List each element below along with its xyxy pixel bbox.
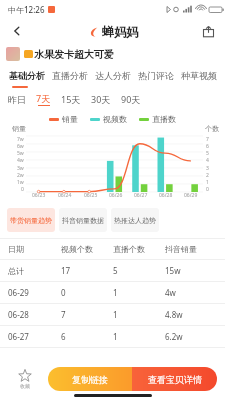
staticText: 直播数 [152, 114, 176, 124]
staticText: 抖音销量 [165, 244, 217, 254]
staticText: 4.8w [165, 309, 217, 320]
button[interactable]: 抖音销量数据 [59, 208, 107, 232]
staticText: 7w [17, 136, 24, 143]
button[interactable]: Share [198, 21, 218, 41]
staticText: 06/27 [134, 192, 148, 199]
staticText: 水果发卡超大可爱 [34, 48, 114, 61]
staticText: 达人分析 [95, 70, 131, 81]
button[interactable]: 昨日 [8, 94, 26, 105]
button[interactable]: 热门评论 [134, 64, 177, 86]
staticText: 06/25 [84, 192, 98, 199]
button[interactable]: 热推达人趋势 [111, 208, 159, 232]
staticText: 1 [206, 179, 209, 186]
staticText: 4w [17, 157, 24, 164]
staticText: 带货销量趋势 [10, 216, 52, 225]
staticText: 抖音销量数据 [62, 216, 104, 225]
staticText: 蝉妈妈 [102, 24, 138, 39]
button[interactable]: 7天 [36, 92, 51, 106]
staticText: 销量 [12, 124, 26, 133]
staticText: 0 [21, 186, 24, 193]
staticText: 直播个数 [113, 244, 165, 254]
staticText: 30天 [91, 93, 111, 105]
staticText: 5 [113, 265, 165, 276]
button[interactable]: 06-28 [8, 304, 217, 325]
button[interactable]: 90天 [121, 93, 141, 105]
button[interactable]: 带货销量趋势 [7, 208, 55, 232]
staticText: 种草视频 [181, 70, 217, 81]
staticText: 查看宝贝详情 [148, 374, 202, 385]
staticText: 1 [113, 287, 165, 298]
staticText: 0 [61, 287, 113, 298]
staticText: 06/28 [159, 192, 173, 199]
staticText: 06/23 [32, 192, 46, 199]
staticText: 基础分析 [9, 70, 45, 81]
staticText: 热推达人趋势 [114, 216, 156, 225]
staticText: 06/24 [58, 192, 72, 199]
staticText: 5w [17, 150, 24, 157]
button[interactable]: 收藏 [8, 369, 42, 389]
staticText: 中午12:26 [8, 4, 45, 15]
button[interactable]: 复制链接 [48, 367, 132, 391]
button[interactable]: 总计 [8, 260, 217, 281]
staticText: 90天 [121, 93, 141, 105]
staticText: 06-27 [8, 331, 61, 342]
button[interactable]: 06-27 [8, 326, 217, 347]
staticText: 3w [17, 165, 24, 172]
staticText: 06/29 [184, 192, 198, 199]
staticText: 1w [17, 179, 24, 186]
staticText: 视频数 [103, 114, 127, 124]
staticText: 直播分析 [52, 70, 88, 81]
button[interactable]: 06-29 [8, 282, 217, 303]
button[interactable]: 15天 [61, 93, 81, 105]
button[interactable]: 直播分析 [48, 64, 91, 86]
staticText: 7天 [36, 92, 51, 104]
staticText: 1 [113, 331, 165, 342]
staticText: 收藏 [20, 383, 30, 389]
staticText: 15天 [61, 93, 81, 105]
staticText: 7 [206, 136, 209, 143]
staticText: 06/26 [109, 192, 123, 199]
staticText: 销量 [62, 114, 78, 124]
staticText: 15w [165, 265, 217, 276]
button[interactable]: 基础分析 [5, 64, 48, 86]
staticText: 总计 [8, 266, 61, 276]
button[interactable]: 查看宝贝详情 [132, 367, 217, 391]
staticText: 3 [206, 165, 209, 172]
staticText: 6.2w [165, 331, 217, 342]
staticText: 7 [61, 309, 113, 320]
staticText: 06-28 [8, 309, 61, 320]
staticText: 视频个数 [61, 244, 113, 254]
staticText: 热门评论 [138, 70, 174, 81]
button[interactable]: 水果发卡超大可爱 [6, 44, 219, 64]
staticText: 复制链接 [72, 374, 108, 385]
staticText: 昨日 [8, 94, 26, 105]
staticText: 0 [206, 186, 209, 193]
staticText: 17 [61, 265, 113, 276]
button[interactable]: Back [6, 20, 28, 42]
staticText: 2w [17, 172, 24, 179]
staticText: 6 [61, 331, 113, 342]
button[interactable]: 种草视频 [177, 64, 220, 86]
staticText: 4w [165, 287, 217, 298]
button[interactable]: 30天 [91, 93, 111, 105]
button[interactable]: 达人分析 [91, 64, 134, 86]
staticText: 1 [113, 309, 165, 320]
staticText: 6 [206, 143, 209, 150]
staticText: 个数 [205, 124, 219, 133]
staticText: 4 [206, 157, 209, 164]
staticText: 06-29 [8, 287, 61, 298]
staticText: 6w [17, 143, 24, 150]
staticText: 5 [206, 150, 209, 157]
staticText: 2 [206, 172, 209, 179]
staticText: 日期 [8, 244, 61, 254]
